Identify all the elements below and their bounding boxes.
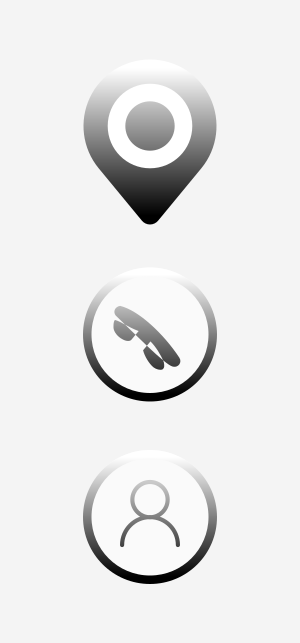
button[interactable]: Call xyxy=(83,267,217,401)
button[interactable]: Profile xyxy=(83,450,217,584)
button[interactable]: Location xyxy=(83,59,216,224)
